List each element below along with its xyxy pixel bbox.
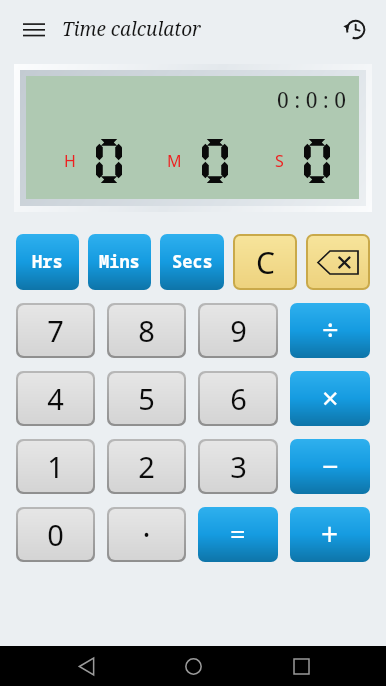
- button[interactable]: ·: [109, 509, 184, 560]
- button[interactable]: History: [332, 7, 376, 51]
- staticText: Mins: [99, 250, 140, 273]
- button[interactable]: 0: [18, 509, 93, 560]
- button[interactable]: 5: [109, 373, 184, 424]
- button[interactable]: Back: [64, 646, 108, 686]
- button[interactable]: 6: [200, 373, 276, 424]
- button[interactable]: 2: [109, 441, 184, 492]
- button[interactable]: +: [290, 507, 370, 560]
- staticText: −: [322, 446, 339, 485]
- staticText: 5: [138, 379, 155, 418]
- staticText: C: [256, 242, 275, 283]
- button[interactable]: 3: [200, 441, 276, 492]
- button[interactable]: =: [198, 507, 278, 560]
- button[interactable]: Home: [171, 646, 215, 686]
- staticText: 0: [47, 515, 64, 554]
- button[interactable]: ×: [290, 371, 370, 424]
- staticText: Hrs: [32, 250, 63, 273]
- staticText: 7: [47, 311, 64, 350]
- button[interactable]: 4: [18, 373, 93, 424]
- staticText: ·: [142, 514, 151, 555]
- staticText: 1: [47, 447, 64, 486]
- button[interactable]: ÷: [290, 303, 370, 356]
- staticText: 8: [138, 311, 155, 350]
- staticText: 6: [230, 379, 247, 418]
- button[interactable]: Secs: [160, 234, 224, 288]
- staticText: 3: [230, 447, 247, 486]
- staticText: +: [321, 513, 339, 554]
- staticText: ×: [322, 378, 339, 417]
- button[interactable]: Hrs: [16, 234, 79, 288]
- button[interactable]: Menu: [12, 7, 56, 51]
- staticText: 0 : 0 : 0: [277, 86, 347, 115]
- staticText: =: [230, 515, 246, 552]
- button[interactable]: 9: [200, 305, 276, 356]
- button[interactable]: Recents: [279, 646, 323, 686]
- staticText: H: [64, 150, 76, 172]
- button[interactable]: 1: [18, 441, 93, 492]
- staticText: Time calculator: [62, 16, 201, 42]
- staticText: 9: [230, 311, 247, 350]
- staticText: 4: [47, 379, 64, 418]
- staticText: 2: [138, 447, 155, 486]
- button[interactable]: −: [290, 439, 370, 492]
- button[interactable]: Mins: [88, 234, 151, 288]
- staticText: Secs: [172, 250, 213, 273]
- staticText: M: [167, 150, 182, 172]
- button[interactable]: 7: [18, 305, 93, 356]
- staticText: ÷: [322, 310, 339, 349]
- button[interactable]: Clear: [235, 236, 295, 288]
- button[interactable]: 8: [109, 305, 184, 356]
- staticText: S: [275, 150, 284, 172]
- button[interactable]: Backspace: [308, 236, 368, 288]
